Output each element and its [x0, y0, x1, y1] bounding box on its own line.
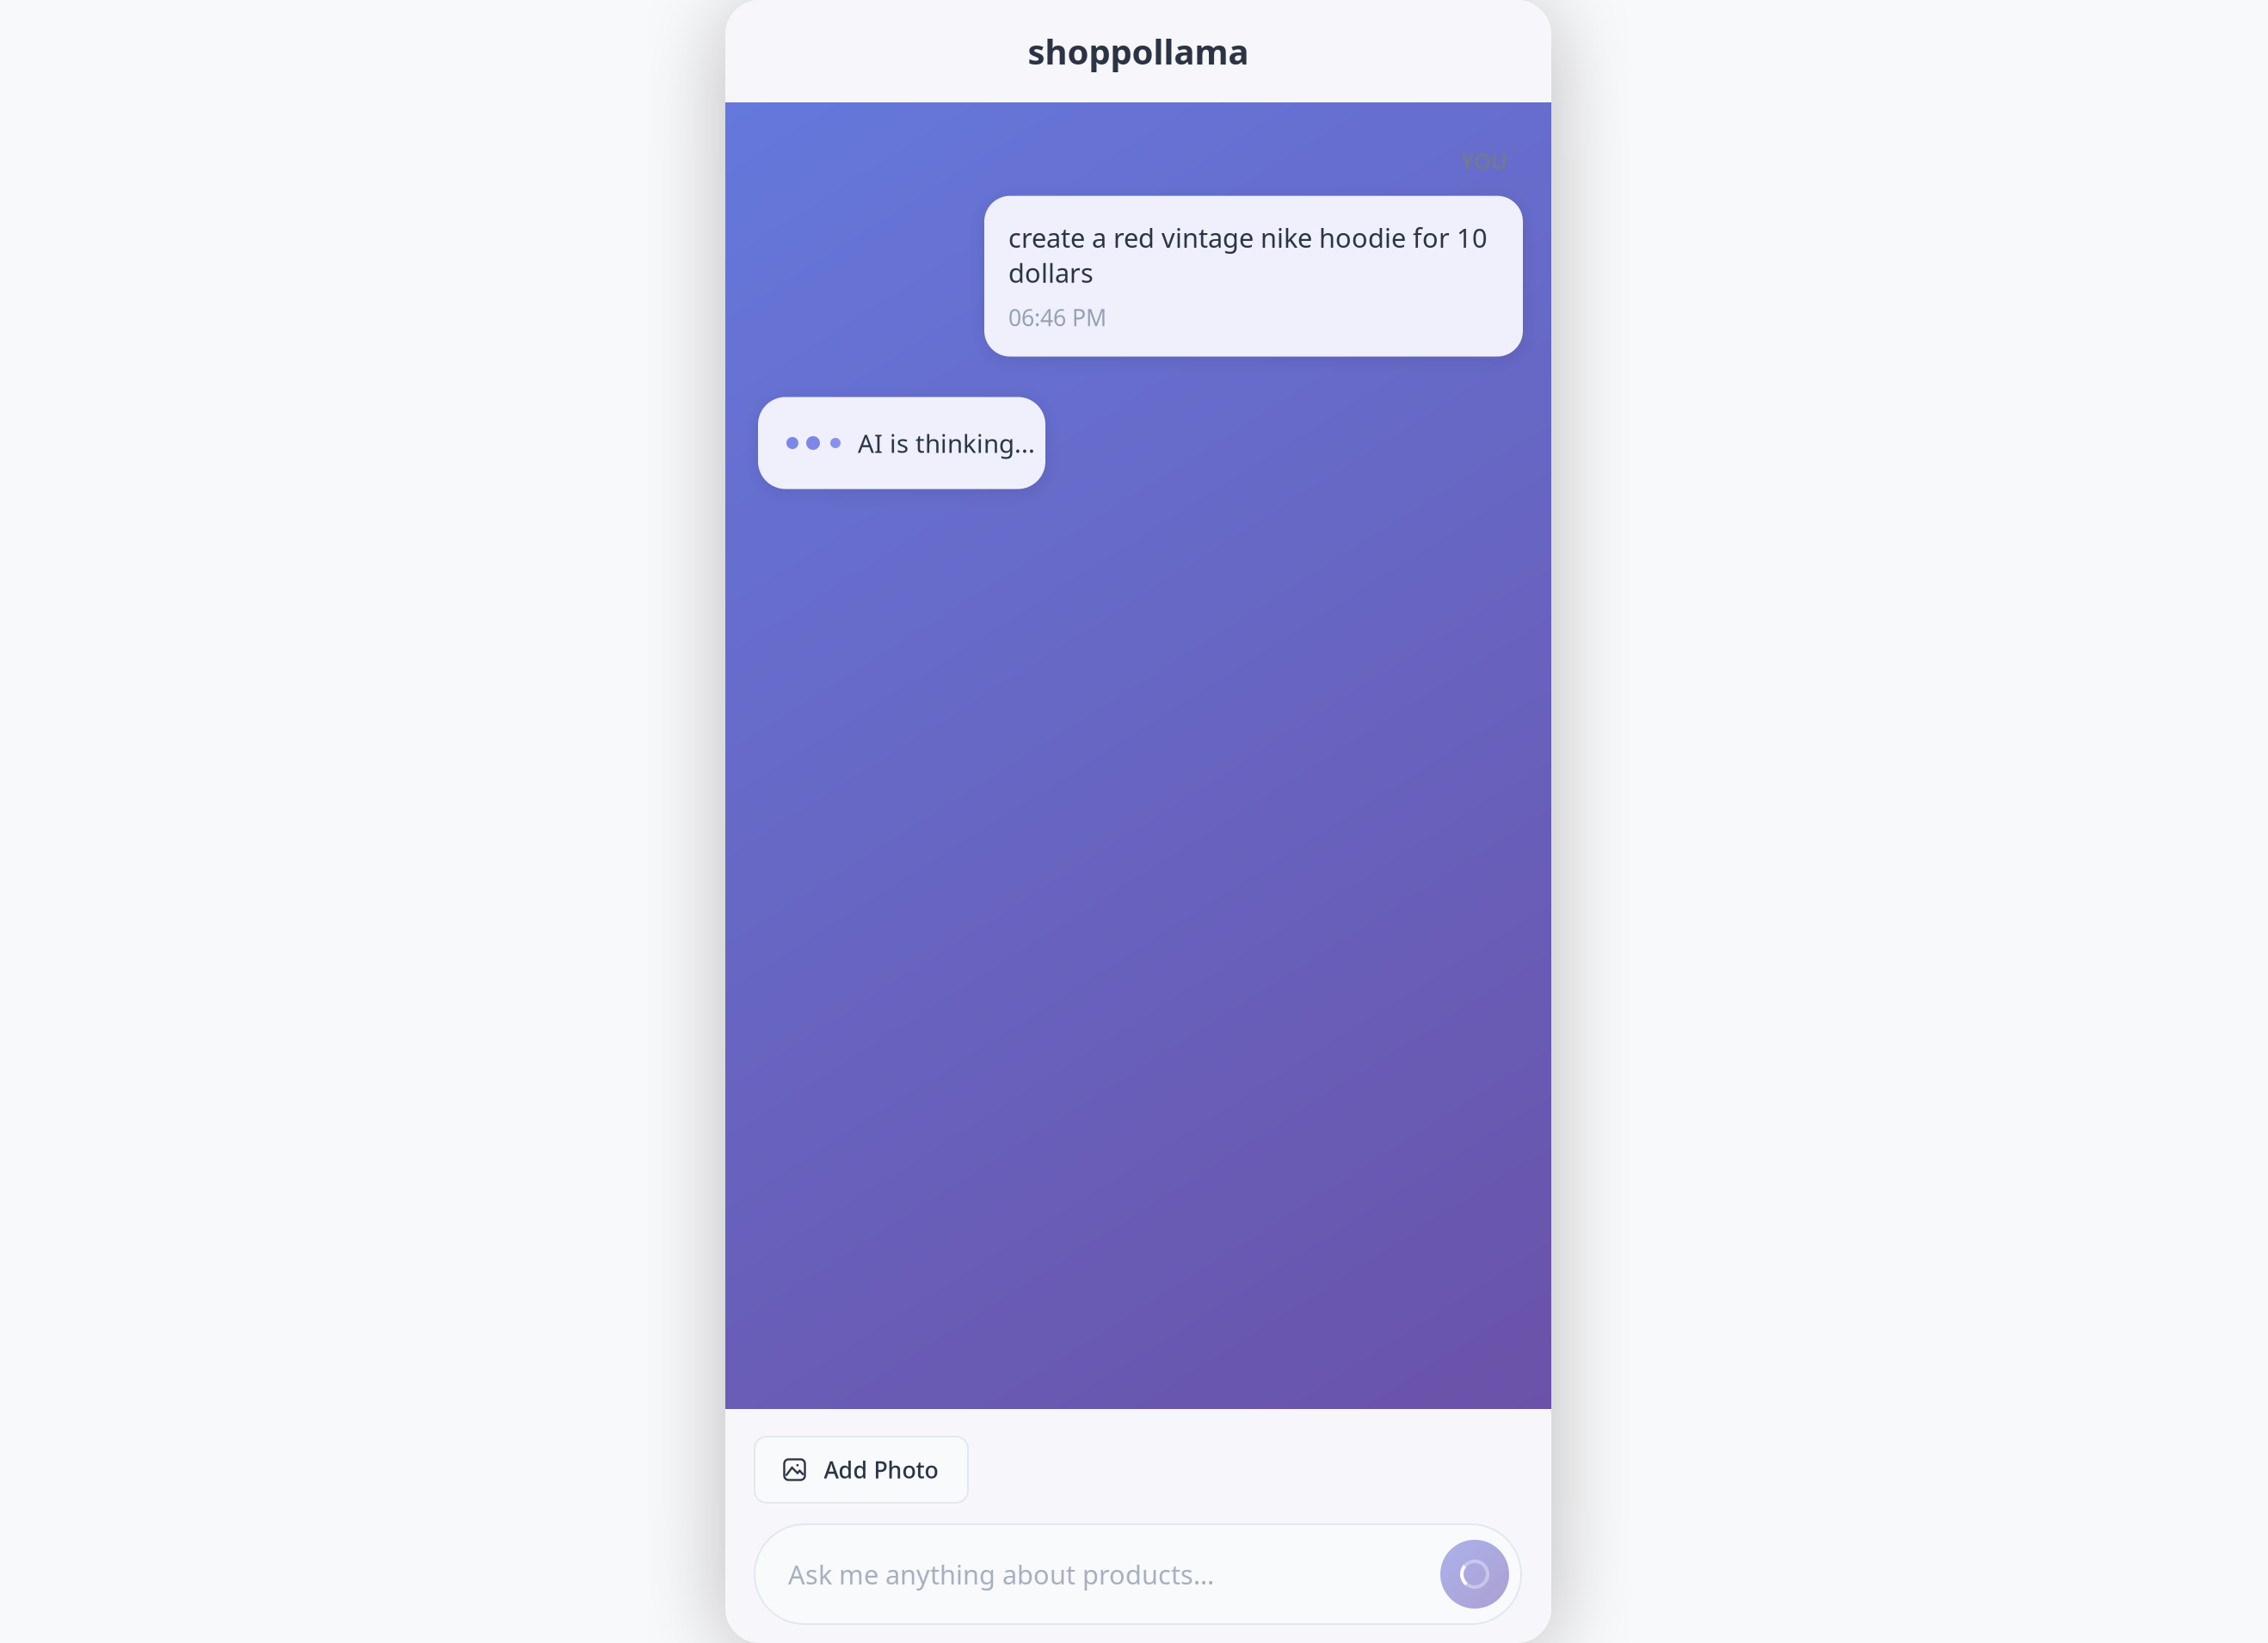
- staticText: create a red vintage nike hoodie for 10 …: [1008, 220, 1488, 290]
- button[interactable]: Add Photo: [755, 1437, 968, 1503]
- staticText: shoppollama: [1028, 28, 1249, 74]
- button[interactable]: Ask me anything about products...: [755, 1524, 1521, 1624]
- staticText: AI is thinking...: [858, 426, 1035, 460]
- staticText: Ask me anything about products...: [788, 1557, 1214, 1592]
- staticText: YOU: [1461, 146, 1507, 175]
- button[interactable]: Send: [1440, 1540, 1509, 1609]
- staticText: Add Photo: [824, 1454, 938, 1485]
- staticText: 06:46 PM: [1008, 302, 1106, 332]
